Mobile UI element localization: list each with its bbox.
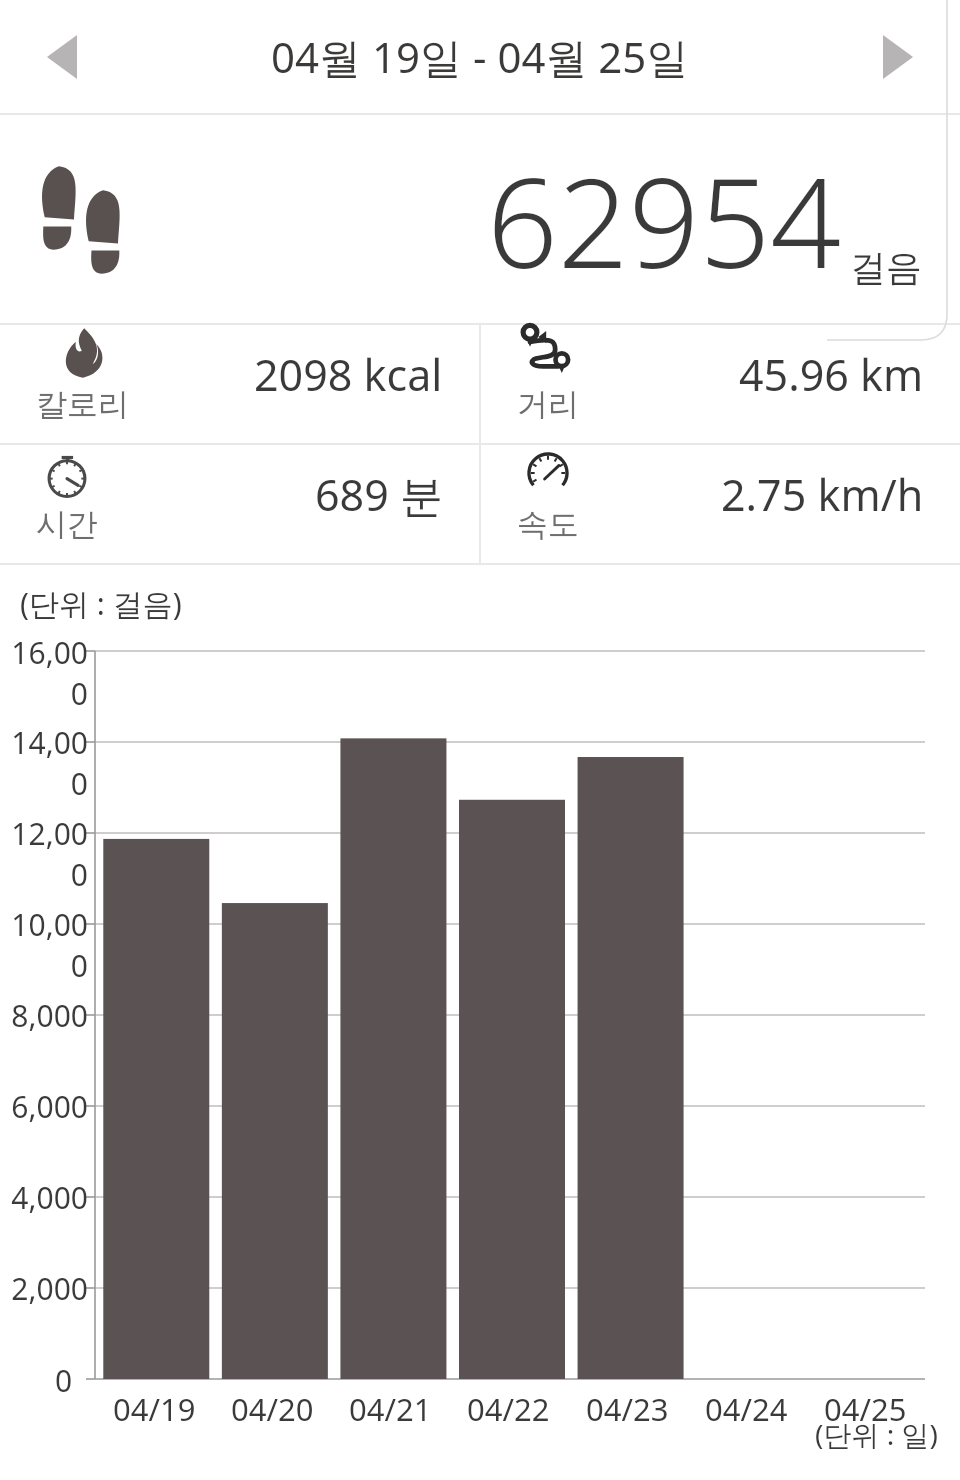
staticText: 04/19 bbox=[113, 1388, 196, 1430]
button[interactable]: Next week bbox=[870, 29, 926, 85]
staticText: 0 bbox=[55, 1360, 73, 1401]
staticText: 689 분 bbox=[315, 465, 443, 524]
other: Steps bbox=[36, 159, 136, 279]
other: 거리 bbox=[518, 325, 578, 381]
staticText: 4,000 bbox=[11, 1177, 88, 1218]
staticText: 04/25 bbox=[824, 1388, 907, 1430]
button[interactable]: 칼로리 bbox=[0, 325, 479, 424]
button[interactable]: Steps bbox=[0, 115, 960, 323]
staticText: 10,000 bbox=[0, 904, 88, 986]
staticText: 16,000 bbox=[0, 632, 88, 714]
staticText: 거리 bbox=[517, 385, 579, 424]
staticText: 04/23 bbox=[586, 1388, 669, 1430]
other: 칼로리 bbox=[53, 325, 113, 381]
staticText: 04/20 bbox=[231, 1388, 314, 1430]
staticText: 8,000 bbox=[11, 995, 88, 1036]
button[interactable]: 시간 bbox=[0, 445, 479, 544]
staticText: 2.75 km/h bbox=[721, 465, 924, 524]
button[interactable]: 거리 bbox=[481, 325, 960, 424]
staticText: (단위 : 일) bbox=[815, 1415, 938, 1453]
staticText: 2098 kcal bbox=[254, 345, 443, 404]
staticText: 04/24 bbox=[705, 1388, 788, 1430]
staticText: 45.96 km bbox=[739, 345, 924, 404]
staticText: (단위 : 걸음) bbox=[20, 583, 182, 624]
staticText: 6,000 bbox=[11, 1086, 88, 1127]
staticText: 2,000 bbox=[11, 1268, 88, 1309]
staticText: 걸음 bbox=[850, 245, 922, 290]
staticText: 04/21 bbox=[349, 1388, 432, 1430]
staticText: 04/22 bbox=[467, 1388, 550, 1430]
other: 시간 bbox=[37, 445, 97, 501]
staticText: 14,000 bbox=[0, 722, 88, 804]
staticText: 속도 bbox=[517, 505, 579, 544]
staticText: 04월 19일 - 04월 25일 bbox=[271, 28, 689, 85]
staticText: 12,000 bbox=[0, 813, 88, 895]
other: 속도 bbox=[518, 445, 578, 501]
staticText: 칼로리 bbox=[36, 385, 129, 424]
button[interactable]: Previous week bbox=[34, 29, 90, 85]
button[interactable]: 속도 bbox=[481, 445, 960, 544]
staticText: 62954 bbox=[487, 135, 842, 304]
staticText: 시간 bbox=[36, 505, 98, 544]
